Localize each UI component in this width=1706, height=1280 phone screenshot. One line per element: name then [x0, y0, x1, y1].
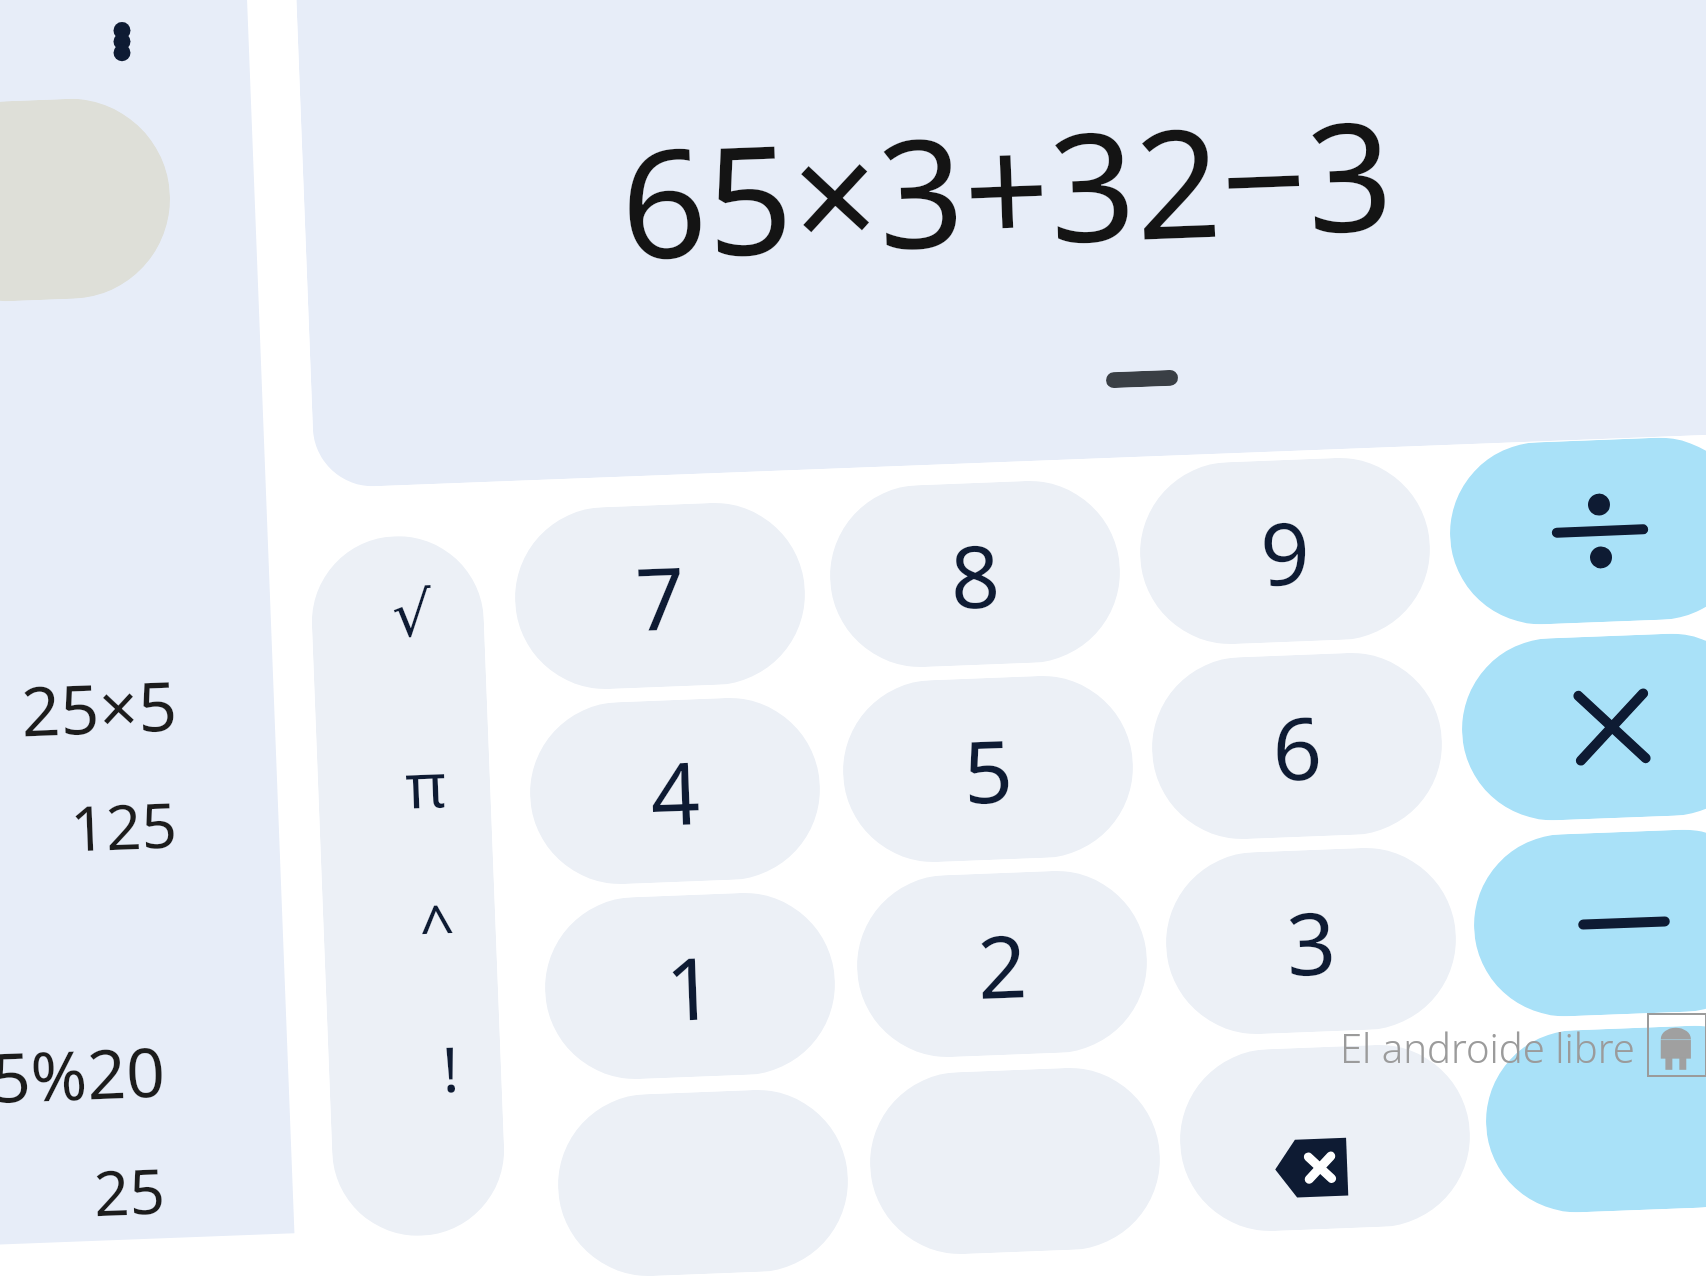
button[interactable] — [0, 95, 174, 305]
staticText: ^ — [417, 883, 457, 969]
staticText: √ — [391, 577, 433, 651]
staticText: 25 — [0, 1147, 167, 1249]
staticText: 25×5 — [0, 657, 179, 768]
button[interactable]: 5 — [840, 672, 1136, 865]
button[interactable]: 1 — [542, 889, 838, 1082]
button[interactable]: 2 — [854, 867, 1150, 1060]
staticText: 6 — [1270, 687, 1324, 806]
button[interactable]: Operator — [1459, 630, 1706, 824]
staticText: 2 — [975, 905, 1029, 1024]
button[interactable]: Operator — [1483, 1022, 1706, 1216]
staticText: ! — [440, 1026, 461, 1110]
staticText: π — [403, 741, 448, 827]
button[interactable] — [555, 1086, 851, 1279]
button[interactable]: 125 — [0, 781, 179, 883]
staticText: 65×3+32−3 — [617, 70, 1396, 289]
button[interactable]: ^ — [395, 876, 479, 975]
staticText: 3 — [1284, 882, 1338, 1001]
button[interactable] — [309, 533, 507, 1239]
button[interactable]: 25 — [0, 1147, 167, 1249]
button[interactable]: More options — [92, 0, 152, 80]
button[interactable]: 4 — [527, 694, 823, 887]
button[interactable] — [1177, 1041, 1473, 1234]
button[interactable]: 25%20 — [0, 1023, 167, 1134]
button[interactable]: π — [383, 734, 467, 833]
button[interactable]: Operator — [1471, 826, 1706, 1020]
button[interactable]: Operator — [1447, 434, 1706, 628]
staticText: 9 — [1258, 492, 1312, 611]
staticText: El androide libre — [1340, 1020, 1635, 1074]
button[interactable] — [1106, 370, 1178, 388]
button[interactable]: 25×5 — [0, 657, 179, 768]
staticText: 7 — [633, 537, 687, 656]
button[interactable]: √ — [370, 564, 454, 663]
button[interactable]: ! — [408, 1018, 492, 1117]
staticText: 125 — [0, 781, 179, 883]
button[interactable] — [0, 0, 294, 1246]
staticText: 1 — [663, 927, 717, 1046]
button[interactable]: 3 — [1163, 844, 1459, 1037]
button[interactable] — [286, 0, 1706, 488]
button[interactable]: 6 — [1149, 649, 1445, 842]
button[interactable]: 8 — [827, 477, 1123, 670]
button[interactable]: Backspace — [1270, 1126, 1353, 1209]
button[interactable]: 7 — [512, 499, 808, 692]
staticText: 25%20 — [0, 1023, 167, 1134]
staticText: 8 — [948, 515, 1002, 634]
staticText: 5 — [961, 710, 1015, 829]
button[interactable]: 9 — [1137, 454, 1433, 647]
staticText: 4 — [648, 732, 702, 851]
button[interactable] — [867, 1064, 1163, 1257]
